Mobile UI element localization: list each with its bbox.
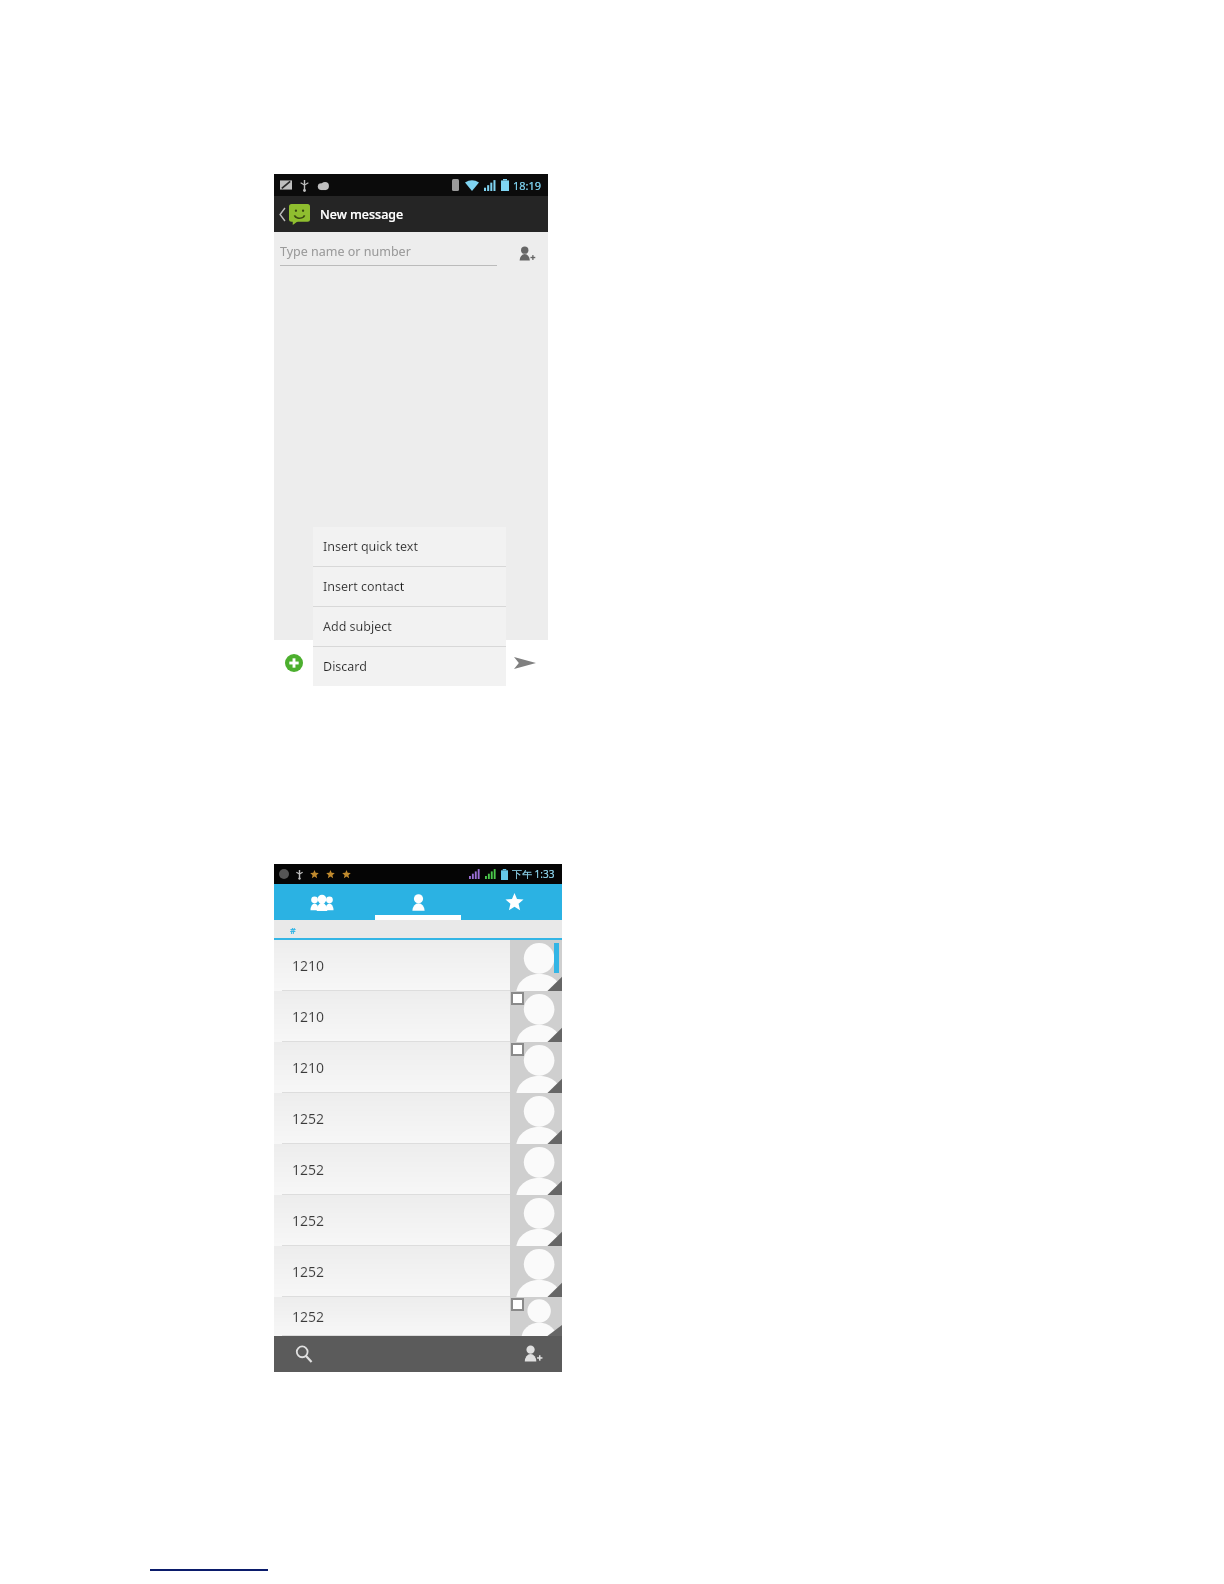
button[interactable]: 1252 [274,1246,562,1297]
button[interactable]: Add recipient [514,242,538,266]
button[interactable]: Insert quick text [313,527,506,567]
button[interactable]: Add subject [313,607,506,647]
button[interactable]: New message [274,196,548,232]
staticText: 1210 [292,1007,325,1026]
button[interactable]: Favorites [466,884,562,920]
button[interactable]: 1210 [274,991,562,1042]
staticText: 1252 [292,1211,325,1230]
button[interactable]: Contacts [370,884,466,920]
button[interactable]: Emoji [310,652,332,674]
button[interactable]: Insert contact [313,567,506,607]
button[interactable]: Send [508,646,542,680]
staticText: 1252 [292,1109,325,1128]
staticText: Insert contact [323,578,405,595]
staticText: 18:19 [513,178,542,193]
staticText: Insert quick text [323,538,418,555]
staticText: 1252 [292,1262,325,1281]
button[interactable]: Search [274,1336,334,1372]
button[interactable]: Attach [282,651,306,675]
staticText: Add subject [323,618,392,635]
staticText: Type name or number [280,243,411,260]
button[interactable]: 1252 [274,1297,562,1336]
button[interactable]: 1210 [274,940,562,991]
staticText: 1210 [292,1058,325,1077]
staticText: New message [320,206,404,223]
button[interactable]: Discard [313,647,506,686]
button[interactable]: Groups [274,884,370,920]
staticText: 1252 [292,1307,325,1326]
button[interactable]: 1210 [274,1042,562,1093]
button[interactable]: Add contact [502,1336,562,1372]
staticText: 下午 1:33 [512,867,555,881]
staticText: # [290,924,296,936]
staticText: 1252 [292,1160,325,1179]
button[interactable]: 1252 [274,1195,562,1246]
staticText: Discard [323,658,367,675]
button[interactable]: 1252 [274,1093,562,1144]
button[interactable]: 1252 [274,1144,562,1195]
staticText: 1210 [292,956,325,975]
